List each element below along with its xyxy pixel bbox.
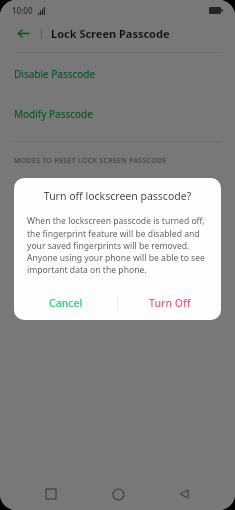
staticText: Cancel (49, 296, 83, 310)
button[interactable]: Back (169, 479, 199, 509)
staticText: Turn off lockscreen passcode? (26, 189, 209, 203)
staticText: When the lockscreen passcode is turned o… (27, 215, 208, 275)
staticText: MODES TO RESET LOCK SCREEN PASSCODE (14, 156, 167, 166)
button[interactable]: Disable Passcode (0, 65, 235, 83)
staticText: Turn Off (149, 296, 191, 310)
staticText: Disable Passcode (14, 67, 96, 81)
staticText: 10:00 (12, 5, 33, 16)
staticText: Fingerprint, Security Email (14, 184, 138, 198)
staticText: Modify Passcode (14, 107, 93, 121)
button[interactable]: Back (14, 24, 32, 42)
button[interactable]: Home (103, 479, 133, 509)
button[interactable]: Fingerprint, Security Email (0, 182, 235, 200)
button[interactable]: Recent apps (36, 479, 66, 509)
button[interactable]: Modify Passcode (0, 105, 235, 123)
button[interactable]: Cancel (14, 288, 117, 317)
staticText: Lock Screen Passcode (51, 26, 170, 41)
button[interactable]: Turn Off (118, 288, 221, 317)
